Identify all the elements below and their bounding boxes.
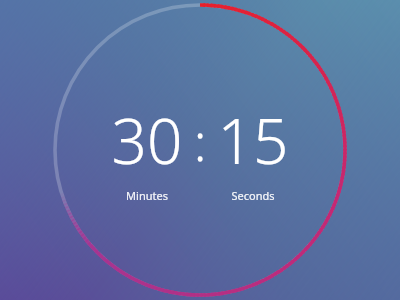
staticText: :	[184, 105, 216, 176]
button[interactable]: Timer progress ring	[0, 0, 400, 300]
staticText: 15	[216, 98, 290, 182]
staticText: Minutes	[110, 188, 184, 203]
staticText: 30	[110, 98, 184, 182]
staticText: Seconds	[216, 188, 290, 203]
